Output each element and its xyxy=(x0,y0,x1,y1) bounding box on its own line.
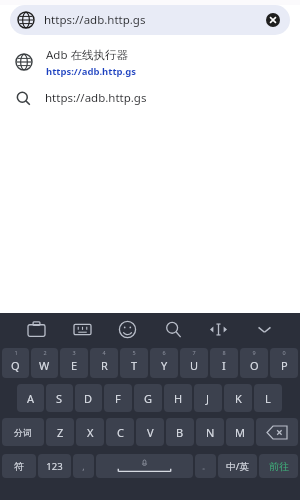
button[interactable]: 8 xyxy=(210,348,238,378)
staticText: 5 xyxy=(132,349,136,356)
button[interactable]: X xyxy=(76,418,104,446)
button[interactable]: https://adb.http.gs xyxy=(0,81,300,115)
staticText: 符 xyxy=(14,460,24,473)
button[interactable]: 1 xyxy=(2,348,29,378)
button[interactable]: B xyxy=(166,418,194,446)
button[interactable]: 符 xyxy=(2,454,36,478)
staticText: 中/英 xyxy=(226,460,249,473)
button[interactable]: Clear xyxy=(264,11,282,29)
button[interactable]: N xyxy=(196,418,224,446)
button[interactable]: Emoji xyxy=(112,314,142,344)
staticText: Z xyxy=(57,425,64,440)
button[interactable]: S xyxy=(46,384,73,412)
button[interactable]: C xyxy=(106,418,134,446)
button[interactable]: Adb 在线执行器 xyxy=(0,43,300,81)
staticText: 。 xyxy=(202,461,210,471)
staticText: L xyxy=(265,391,271,406)
staticText: N xyxy=(206,425,215,440)
staticText: https://adb.http.gs xyxy=(45,90,147,106)
button[interactable]: Hide keyboard xyxy=(249,314,279,344)
staticText: 8 xyxy=(222,349,226,356)
staticText: Adb 在线执行器 xyxy=(46,47,128,63)
staticText: W xyxy=(39,358,50,373)
staticText: Q xyxy=(11,358,20,373)
staticText: J xyxy=(206,391,210,406)
staticText: 3 xyxy=(72,349,76,356)
staticText: A xyxy=(27,391,35,406)
button[interactable]: H xyxy=(164,384,192,412)
button[interactable]: 3 xyxy=(60,348,88,378)
button[interactable]: F xyxy=(104,384,132,412)
button[interactable]: K xyxy=(224,384,252,412)
button[interactable]: 9 xyxy=(240,348,268,378)
staticText: 4 xyxy=(102,349,106,356)
button[interactable]: M xyxy=(226,418,254,446)
button[interactable]: 中/英 xyxy=(218,454,257,478)
button[interactable]: 5 xyxy=(120,348,148,378)
button[interactable]: 6 xyxy=(150,348,178,378)
staticText: H xyxy=(174,391,183,406)
button[interactable]: 前往 xyxy=(259,454,298,478)
staticText: C xyxy=(117,425,124,440)
staticText: 123 xyxy=(46,460,63,473)
staticText: Y xyxy=(161,358,168,373)
button[interactable]: https://adb.http.gs xyxy=(10,5,290,35)
staticText: D xyxy=(84,391,93,406)
staticText: https://adb.http.gs xyxy=(44,12,146,28)
staticText: O xyxy=(250,358,259,373)
staticText: 分词 xyxy=(14,427,32,438)
staticText: X xyxy=(87,425,94,440)
staticText: 2 xyxy=(43,349,47,356)
staticText: V xyxy=(147,425,154,440)
staticText: https://adb.http.gs xyxy=(46,65,136,78)
button[interactable]: Search xyxy=(158,314,188,344)
staticText: K xyxy=(235,391,242,406)
button[interactable]: Clipboard xyxy=(21,314,51,344)
button[interactable]: A xyxy=(17,384,44,412)
button[interactable]: V xyxy=(136,418,164,446)
button[interactable]: 。 xyxy=(195,454,216,478)
staticText: 前往 xyxy=(269,460,289,473)
button[interactable]: 4 xyxy=(90,348,118,378)
button[interactable]: Backspace xyxy=(256,418,298,446)
staticText: 7 xyxy=(192,349,196,356)
staticText: E xyxy=(71,358,78,373)
button[interactable]: 123 xyxy=(38,454,71,478)
staticText: U xyxy=(190,358,199,373)
staticText: I xyxy=(222,358,226,373)
button[interactable]: Z xyxy=(46,418,74,446)
staticText: 6 xyxy=(162,349,166,356)
button[interactable]: 分词 xyxy=(2,418,44,446)
button[interactable]: Keyboard xyxy=(67,314,97,344)
staticText: T xyxy=(131,358,138,373)
button[interactable]: L xyxy=(254,384,282,412)
button[interactable]: Space xyxy=(96,454,193,478)
staticText: M xyxy=(235,425,245,440)
staticText: F xyxy=(115,391,121,406)
button[interactable]: , xyxy=(73,454,94,478)
staticText: B xyxy=(176,425,184,440)
staticText: 9 xyxy=(252,349,256,356)
staticText: 1 xyxy=(14,349,18,356)
staticText: G xyxy=(144,391,153,406)
button[interactable]: D xyxy=(75,384,102,412)
staticText: P xyxy=(281,358,288,373)
button[interactable]: 7 xyxy=(180,348,208,378)
button[interactable]: 2 xyxy=(31,348,58,378)
button[interactable]: J xyxy=(194,384,222,412)
staticText: , xyxy=(82,460,85,472)
button[interactable]: Move cursor xyxy=(203,314,233,344)
button[interactable]: 0 xyxy=(270,348,298,378)
staticText: 0 xyxy=(282,349,286,356)
button[interactable]: G xyxy=(134,384,162,412)
staticText: S xyxy=(56,391,63,406)
staticText: R xyxy=(101,358,108,373)
